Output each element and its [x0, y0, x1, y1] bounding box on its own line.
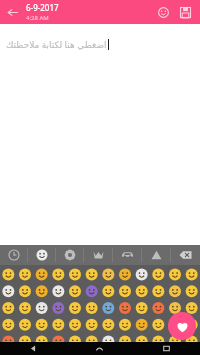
- staticText: 4:28 AM: [26, 14, 49, 22]
- button[interactable]: Travel: [113, 245, 142, 265]
- staticText: 6-9-2017: [26, 2, 59, 13]
- staticText: اضغطي هنا لكتابة ملاحظتك: [6, 38, 107, 50]
- button[interactable]: Objects: [84, 245, 113, 265]
- button[interactable]: Emoji grid: [0, 265, 200, 342]
- button[interactable]: Backspace: [171, 245, 200, 265]
- button[interactable]: Back: [0, 0, 24, 24]
- button[interactable]: Symbols: [142, 245, 171, 265]
- button[interactable]: اضغطي هنا لكتابة ملاحظتك: [0, 24, 200, 245]
- button[interactable]: Home: [66, 342, 133, 355]
- button[interactable]: Nature: [56, 245, 84, 265]
- button[interactable]: Back: [0, 342, 66, 355]
- button[interactable]: Recent: [0, 245, 28, 265]
- button[interactable]: Favorite: [168, 312, 196, 340]
- button[interactable]: Smileys: [28, 245, 56, 265]
- button[interactable]: Recents: [133, 342, 200, 355]
- button[interactable]: Save: [174, 1, 196, 23]
- button[interactable]: Insert emoji: [152, 1, 174, 23]
